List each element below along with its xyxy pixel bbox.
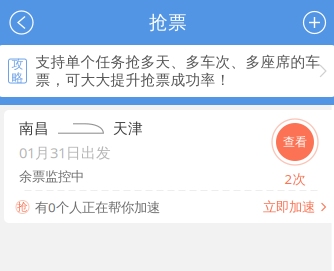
staticText: 立即加速 <box>263 199 315 215</box>
staticText: 查看 <box>283 135 307 149</box>
button[interactable]: Back <box>0 0 43 44</box>
button[interactable]: 南昌 <box>4 110 334 223</box>
staticText: 攻 <box>11 57 23 71</box>
staticText: 有0个人正在帮你加速 <box>35 198 160 216</box>
staticText: 抢 <box>17 200 28 213</box>
button[interactable]: 攻 <box>0 45 334 97</box>
staticText: 2次 <box>284 170 305 188</box>
button[interactable]: Add ticket grab task <box>292 0 334 44</box>
staticText: 支持单个任务抢多天、多车次、多座席的车票，可大大提升抢票成功率！ <box>35 53 320 89</box>
staticText: 01月31日出发 <box>19 143 111 162</box>
staticText: 抢票 <box>149 11 187 34</box>
staticText: 天津 <box>113 119 143 137</box>
staticText: 余票监控中 <box>19 168 84 185</box>
staticText: 略 <box>11 70 23 85</box>
staticText: 南昌 <box>19 119 49 137</box>
